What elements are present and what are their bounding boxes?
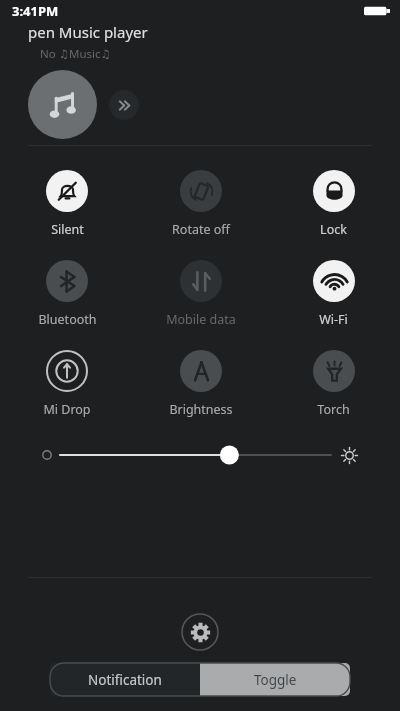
button[interactable]: Torch (267, 348, 400, 420)
button[interactable]: Rotate off (134, 168, 267, 240)
button[interactable]: Next track (109, 90, 139, 120)
button[interactable]: Notification (50, 663, 200, 696)
button[interactable]: Play music (28, 70, 97, 139)
button[interactable]: Lock (267, 168, 400, 240)
staticText: Lock (320, 221, 347, 238)
staticText: Rotate off (172, 221, 230, 238)
button[interactable]: Mobile data (134, 258, 267, 330)
staticText: No ♫Music♫ (40, 46, 111, 62)
staticText: pen Music player (28, 22, 148, 42)
button[interactable]: Silent (0, 168, 134, 240)
staticText: Silent (51, 221, 84, 238)
staticText: Torch (317, 401, 350, 418)
staticText: Bluetooth (38, 311, 97, 328)
staticText: Brightness (169, 401, 233, 418)
button[interactable]: Brightness level (60, 442, 331, 468)
staticText: Mi Drop (43, 401, 91, 418)
staticText: Mobile data (166, 311, 236, 328)
staticText: Notification (88, 671, 162, 689)
button[interactable]: Settings (181, 613, 219, 651)
button[interactable]: Brightness (134, 348, 267, 420)
button[interactable]: Bluetooth (0, 258, 134, 330)
staticText: 3:41PM (12, 2, 59, 20)
staticText: Toggle (254, 671, 297, 689)
button[interactable]: Toggle (200, 663, 350, 696)
staticText: Wi-Fi (319, 311, 348, 328)
button[interactable]: Wi-Fi (267, 258, 400, 330)
button[interactable]: Mi Drop (0, 348, 134, 420)
